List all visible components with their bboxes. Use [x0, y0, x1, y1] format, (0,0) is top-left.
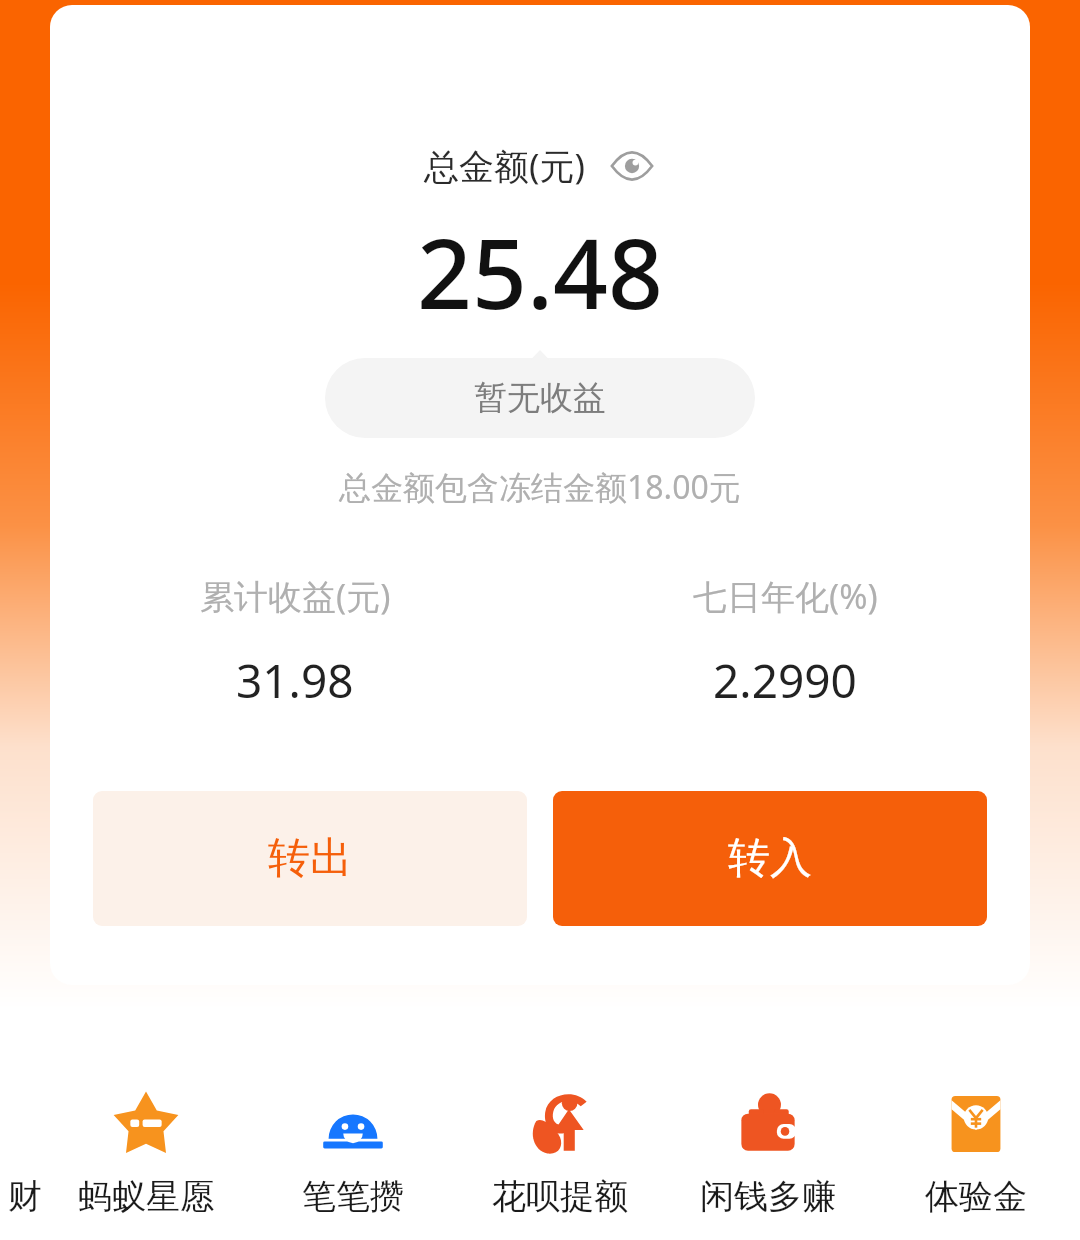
staticText: 蚂蚁星愿 [78, 1175, 214, 1218]
staticText: 总金额(元) [424, 142, 586, 190]
button[interactable]: 体验金 [872, 1087, 1080, 1218]
other: Toggle amount visibility [608, 149, 656, 183]
staticText: 25.48 [417, 206, 663, 337]
staticText: 转出 [268, 832, 352, 885]
staticText: 笔笔攒 [302, 1175, 404, 1218]
staticText: 2.2990 [713, 649, 857, 712]
button[interactable]: 七日年化(%) [540, 573, 1030, 712]
staticText: 31.98 [236, 649, 354, 712]
staticText: 体验金 [925, 1175, 1027, 1218]
button[interactable]: 总金额(元) [416, 138, 664, 194]
staticText: 累计收益(元) [200, 573, 391, 619]
staticText: 闲钱多赚 [700, 1175, 836, 1218]
staticText: 七日年化(%) [693, 573, 878, 619]
button[interactable]: 累计收益(元) [50, 573, 540, 712]
button[interactable]: 转入 [553, 791, 987, 926]
staticText: 暂无收益 [474, 377, 606, 419]
button[interactable]: 笔笔攒 [249, 1087, 456, 1218]
button[interactable]: 花呗提额 [456, 1087, 664, 1218]
staticText: 转入 [728, 832, 812, 885]
button[interactable]: 暂无收益 [325, 358, 755, 438]
staticText: 总金额包含冻结金额18.00元 [339, 465, 741, 509]
staticText: 财 [8, 1175, 42, 1218]
staticText: 花呗提额 [492, 1175, 628, 1218]
button[interactable]: 蚂蚁星愿 [42, 1087, 249, 1218]
button[interactable]: 闲钱多赚 [664, 1087, 872, 1218]
button[interactable]: 转出 [93, 791, 527, 926]
